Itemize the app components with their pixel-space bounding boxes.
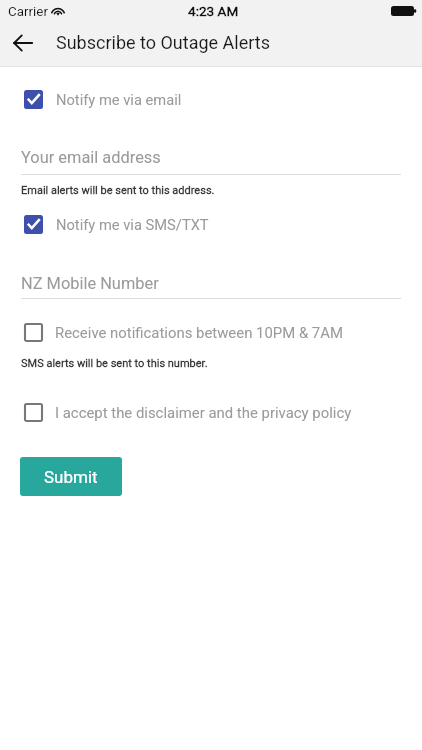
staticText: 4:23 AM xyxy=(188,3,239,19)
button[interactable]: I accept the disclaimer and the privacy … xyxy=(16,394,364,431)
button[interactable]: Back xyxy=(3,23,43,63)
staticText: Your email address xyxy=(21,148,161,167)
button[interactable]: Notify me via email xyxy=(16,81,194,118)
staticText: Receive notifications between 10PM & 7AM xyxy=(55,324,343,341)
staticText: Notify me via SMS/TXT xyxy=(56,216,209,233)
button[interactable]: NZ Mobile Number xyxy=(21,272,401,299)
button[interactable]: Your email address xyxy=(21,146,401,175)
staticText: I accept the disclaimer and the privacy … xyxy=(55,404,352,421)
staticText: SMS alerts will be sent to this number. xyxy=(21,357,208,370)
staticText: Notify me via email xyxy=(56,91,182,108)
staticText: Submit xyxy=(44,467,98,487)
staticText: NZ Mobile Number xyxy=(21,274,159,293)
button[interactable]: Notify me via SMS/TXT xyxy=(16,206,221,243)
button[interactable]: Receive notifications between 10PM & 7AM xyxy=(16,314,355,351)
button[interactable]: Submit xyxy=(20,457,122,496)
staticText: Email alerts will be sent to this addres… xyxy=(21,184,215,197)
staticText: Carrier xyxy=(8,4,48,20)
staticText: Subscribe to Outage Alerts xyxy=(56,32,270,53)
